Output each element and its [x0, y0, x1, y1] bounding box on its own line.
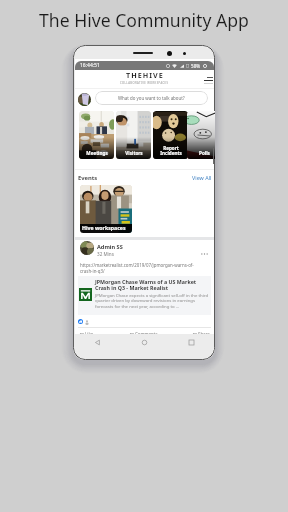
- button[interactable]: Report Incidents: [153, 111, 188, 159]
- staticText: 16:44:51: [80, 62, 100, 69]
- staticText: The Hive Community App: [39, 8, 249, 32]
- staticText: View All: [192, 174, 212, 181]
- staticText: What do you want to talk about?: [118, 95, 185, 101]
- button[interactable]: Menu: [202, 74, 214, 86]
- staticText: Report Incidents: [160, 145, 182, 156]
- button[interactable]: Like: [79, 331, 94, 337]
- staticText: THEHIVE: [126, 70, 164, 80]
- button[interactable]: Meetings: [79, 111, 114, 159]
- button[interactable]: Visitors: [116, 111, 151, 159]
- staticText: Visitors: [125, 150, 143, 156]
- staticText: Comments: [135, 331, 158, 337]
- button[interactable]: Recent apps: [185, 336, 198, 349]
- staticText: COLLABORATIVE WORKSPACES: [120, 81, 169, 85]
- staticText: JPMorgan Chase Warns of a US Market Cras…: [95, 278, 209, 292]
- button[interactable]: JPMorgan Chase Warns of a US Market Cras…: [78, 276, 211, 315]
- staticText: Like: [85, 331, 94, 337]
- staticText: Events: [78, 174, 98, 182]
- staticText: Hive workspaces: [82, 224, 126, 231]
- button[interactable]: Profile: [78, 93, 91, 106]
- staticText: Share: [198, 331, 210, 337]
- button[interactable]: Polls: [187, 111, 215, 159]
- staticText: Polls: [199, 150, 210, 156]
- button[interactable]: More options: [199, 249, 210, 259]
- staticText: JPMorgan Chase expects a significant sel…: [95, 292, 209, 310]
- button[interactable]: Hive workspaces: [80, 185, 132, 233]
- button[interactable]: Home: [138, 336, 151, 349]
- staticText: 58%: [191, 63, 201, 69]
- staticText: https://marketrealist.com/2019/07/jpmorg…: [80, 262, 196, 274]
- button[interactable]: Comments: [129, 331, 158, 337]
- staticText: Meetings: [86, 150, 108, 156]
- button[interactable]: Back: [91, 336, 104, 349]
- button[interactable]: Share: [192, 331, 210, 337]
- staticText: 32 Mins: [97, 251, 114, 257]
- button[interactable]: What do you want to talk about?: [95, 91, 208, 105]
- button[interactable]: View All: [192, 174, 212, 181]
- staticText: Admin SS: [97, 243, 123, 251]
